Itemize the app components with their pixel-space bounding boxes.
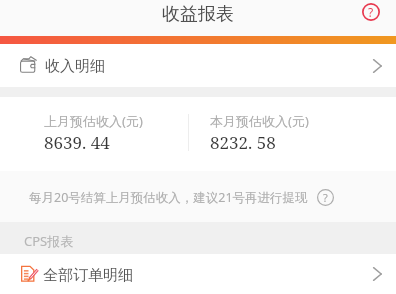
other: 查看详情 [368, 59, 382, 73]
staticText: 8639. 44 [44, 131, 110, 154]
staticText: ? [368, 4, 374, 20]
button[interactable]: 收入明细 [0, 44, 396, 87]
staticText: 收入明细 [45, 57, 105, 76]
staticText: ? [323, 190, 328, 205]
staticText: 全部订单明细 [43, 266, 133, 285]
staticText: 上月预估收入(元) [44, 112, 143, 130]
staticText: 8232. 58 [210, 131, 276, 154]
staticText: CPS报表 [24, 232, 74, 250]
other: 查看详情 [368, 267, 382, 281]
staticText: 每月20号结算上月预估收入，建议21号再进行提现 [29, 189, 308, 206]
staticText: 收益报表 [162, 3, 234, 26]
button[interactable]: 帮助 [356, 0, 386, 27]
button[interactable]: 全部订单明细 [0, 254, 396, 294]
staticText: 本月预估收入(元) [210, 112, 309, 130]
button[interactable]: 说明 [316, 188, 334, 206]
